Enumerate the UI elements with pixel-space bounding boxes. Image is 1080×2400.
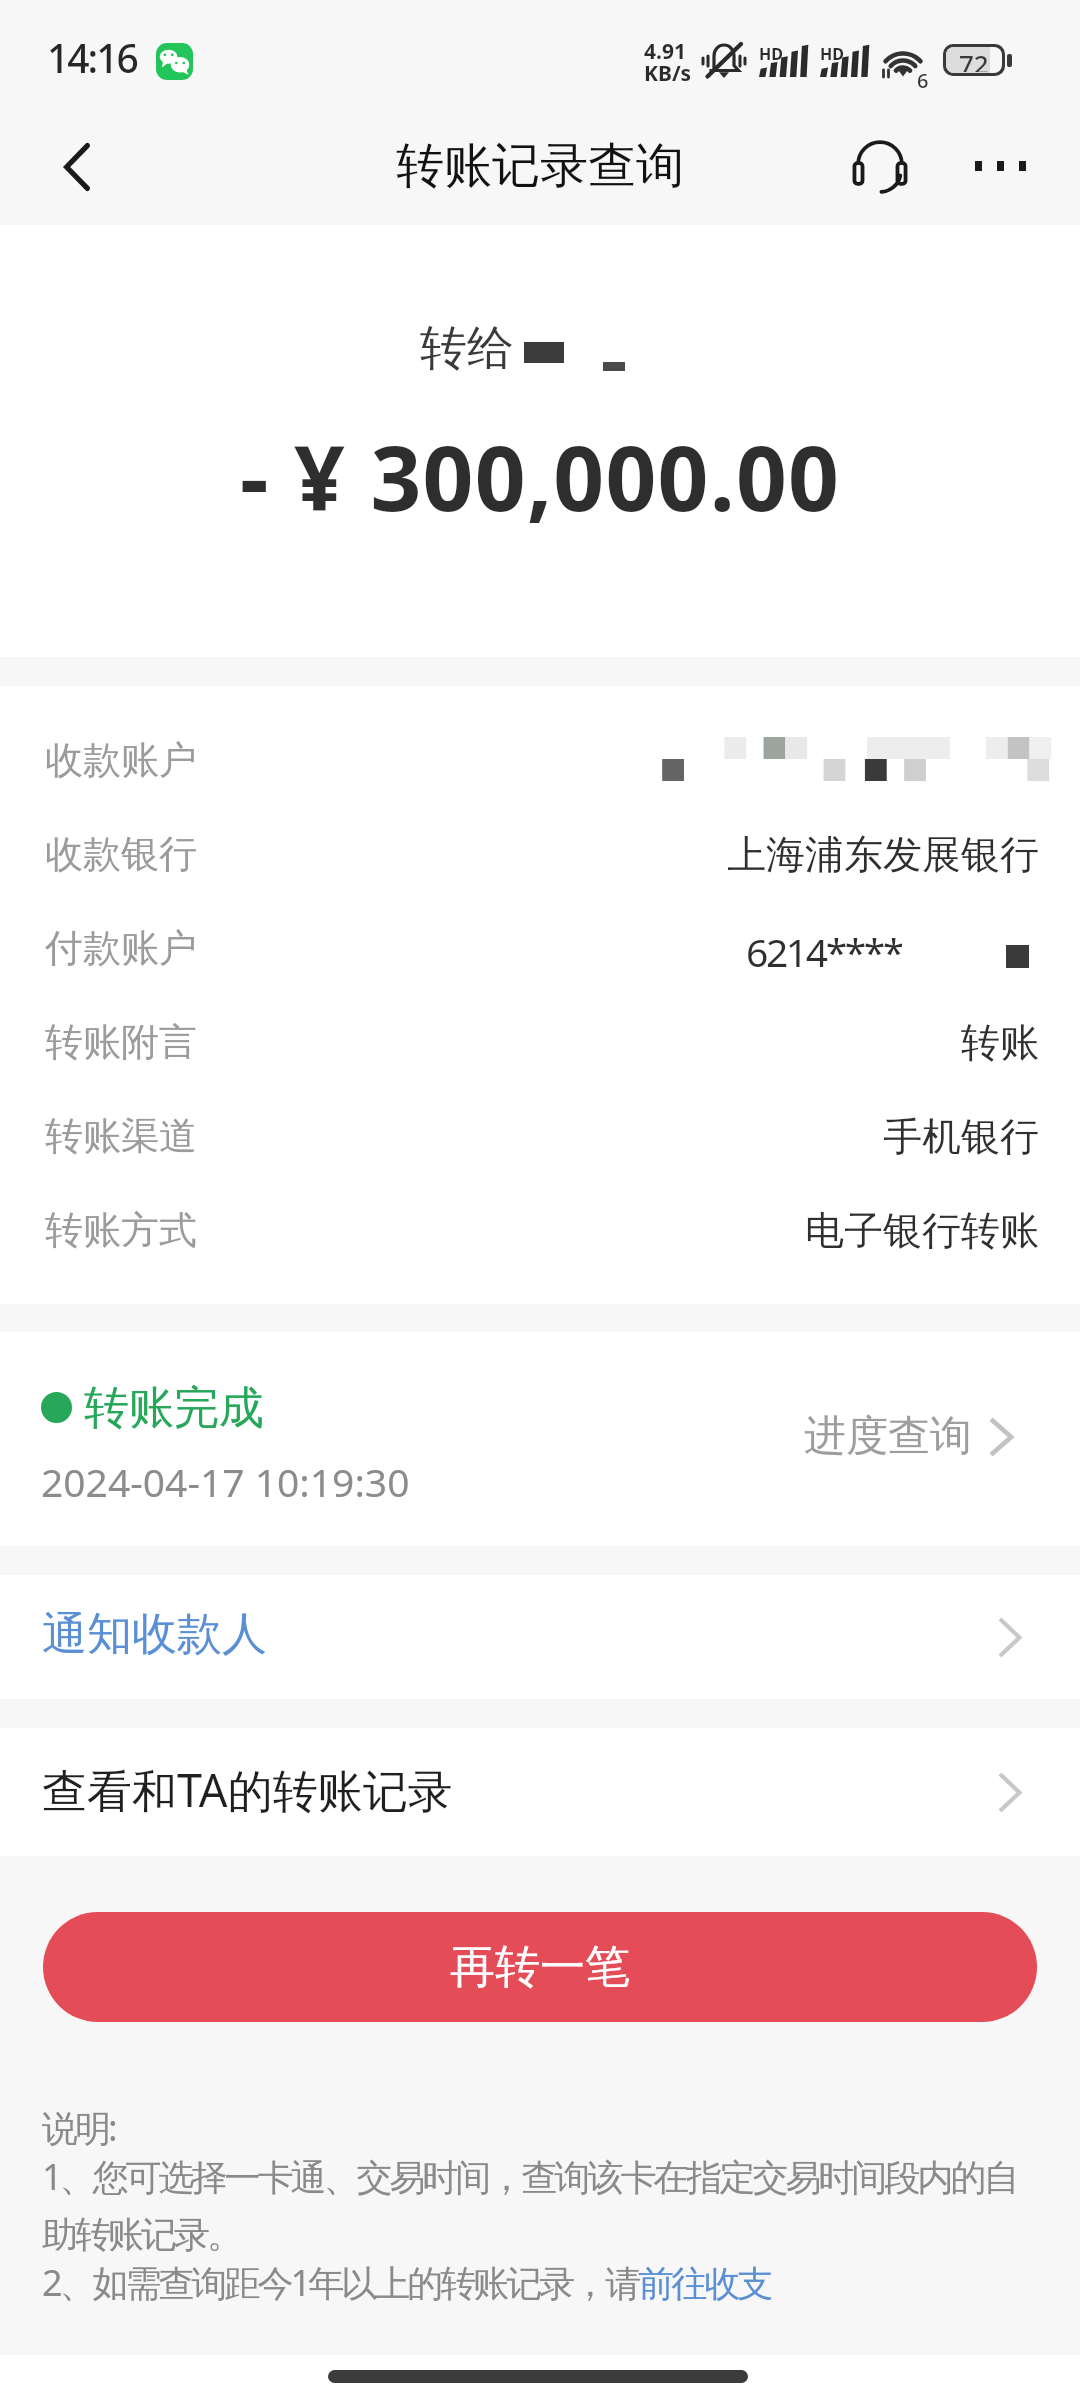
button[interactable]: 查看和TA的转账记录: [0, 1728, 1080, 1856]
button[interactable]: 再转一笔: [43, 1912, 1037, 2022]
staticText: HD: [759, 43, 783, 65]
staticText: 2、如需查询距今1年以上的转账记录，请前往收支: [42, 2258, 771, 2307]
button[interactable]: Customer service: [827, 116, 933, 222]
staticText: 4.91: [644, 37, 686, 66]
staticText: 6214****: [746, 925, 902, 971]
staticText: 转账方式: [45, 1206, 197, 1254]
staticText: HD: [820, 43, 844, 65]
staticText: 查看和TA的转账记录: [42, 1759, 453, 1820]
button[interactable]: 进度查询: [792, 1402, 1026, 1471]
staticText: KB/s: [644, 59, 692, 88]
staticText: 说明:: [42, 2103, 115, 2152]
staticText: 72: [959, 47, 989, 72]
staticText: 1、您可选择一卡通、交易时间，查询该卡在指定交易时间段内的自助转账记录。: [42, 2152, 1042, 2258]
staticText: 通知收款人: [42, 1606, 267, 1663]
staticText: 收款账户: [45, 736, 197, 784]
staticText: 转账: [961, 1018, 1039, 1067]
staticText: 付款账户: [45, 924, 197, 972]
staticText: 转账完成: [84, 1380, 264, 1437]
staticText: 6: [917, 67, 929, 94]
staticText: 上海浦东发展银行: [727, 830, 1039, 879]
button[interactable]: More options: [947, 116, 1053, 222]
staticText: 转账附言: [45, 1018, 197, 1066]
staticText: 转账记录查询: [396, 136, 684, 196]
staticText: 转给: [420, 319, 514, 378]
staticText: 电子银行转账: [805, 1206, 1039, 1255]
staticText: 收款银行: [45, 830, 197, 878]
button[interactable]: 通知收款人: [0, 1575, 1080, 1699]
staticText: 转账渠道: [45, 1112, 197, 1160]
staticText: 再转一笔: [450, 1939, 630, 1996]
button[interactable]: Back: [22, 114, 132, 224]
staticText: 手机银行: [883, 1112, 1039, 1161]
staticText: 2024-04-17 10:19:30: [41, 1455, 410, 1508]
staticText: 14:16: [47, 31, 137, 84]
staticText: - ¥ 300,000.00: [240, 416, 841, 537]
staticText: 进度查询: [804, 1410, 972, 1463]
